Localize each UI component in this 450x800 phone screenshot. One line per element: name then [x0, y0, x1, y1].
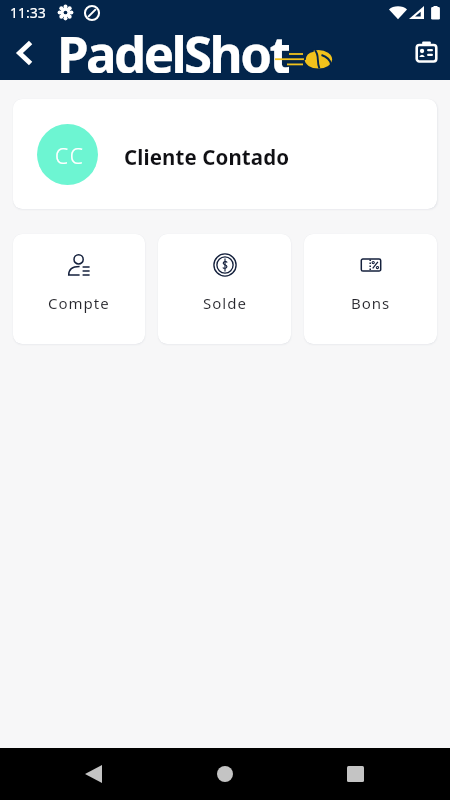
button[interactable]: Compte: [13, 234, 145, 344]
staticText: Solde: [203, 293, 247, 313]
staticText: PadelShot: [57, 18, 289, 73]
staticText: Compte: [48, 293, 110, 313]
button[interactable]: Home: [201, 750, 249, 798]
staticText: CC: [55, 142, 86, 171]
button[interactable]: Solde: [158, 234, 291, 344]
button[interactable]: Back: [69, 750, 117, 798]
button[interactable]: CC: [13, 99, 437, 209]
staticText: 11:33: [10, 3, 46, 22]
staticText: Cliente Contado: [124, 143, 290, 171]
staticText: Bons: [351, 293, 391, 313]
button[interactable]: Back: [0, 25, 52, 80]
button[interactable]: Recent apps: [331, 750, 379, 798]
button[interactable]: Bons: [304, 234, 437, 344]
button[interactable]: Membership card: [402, 25, 450, 80]
